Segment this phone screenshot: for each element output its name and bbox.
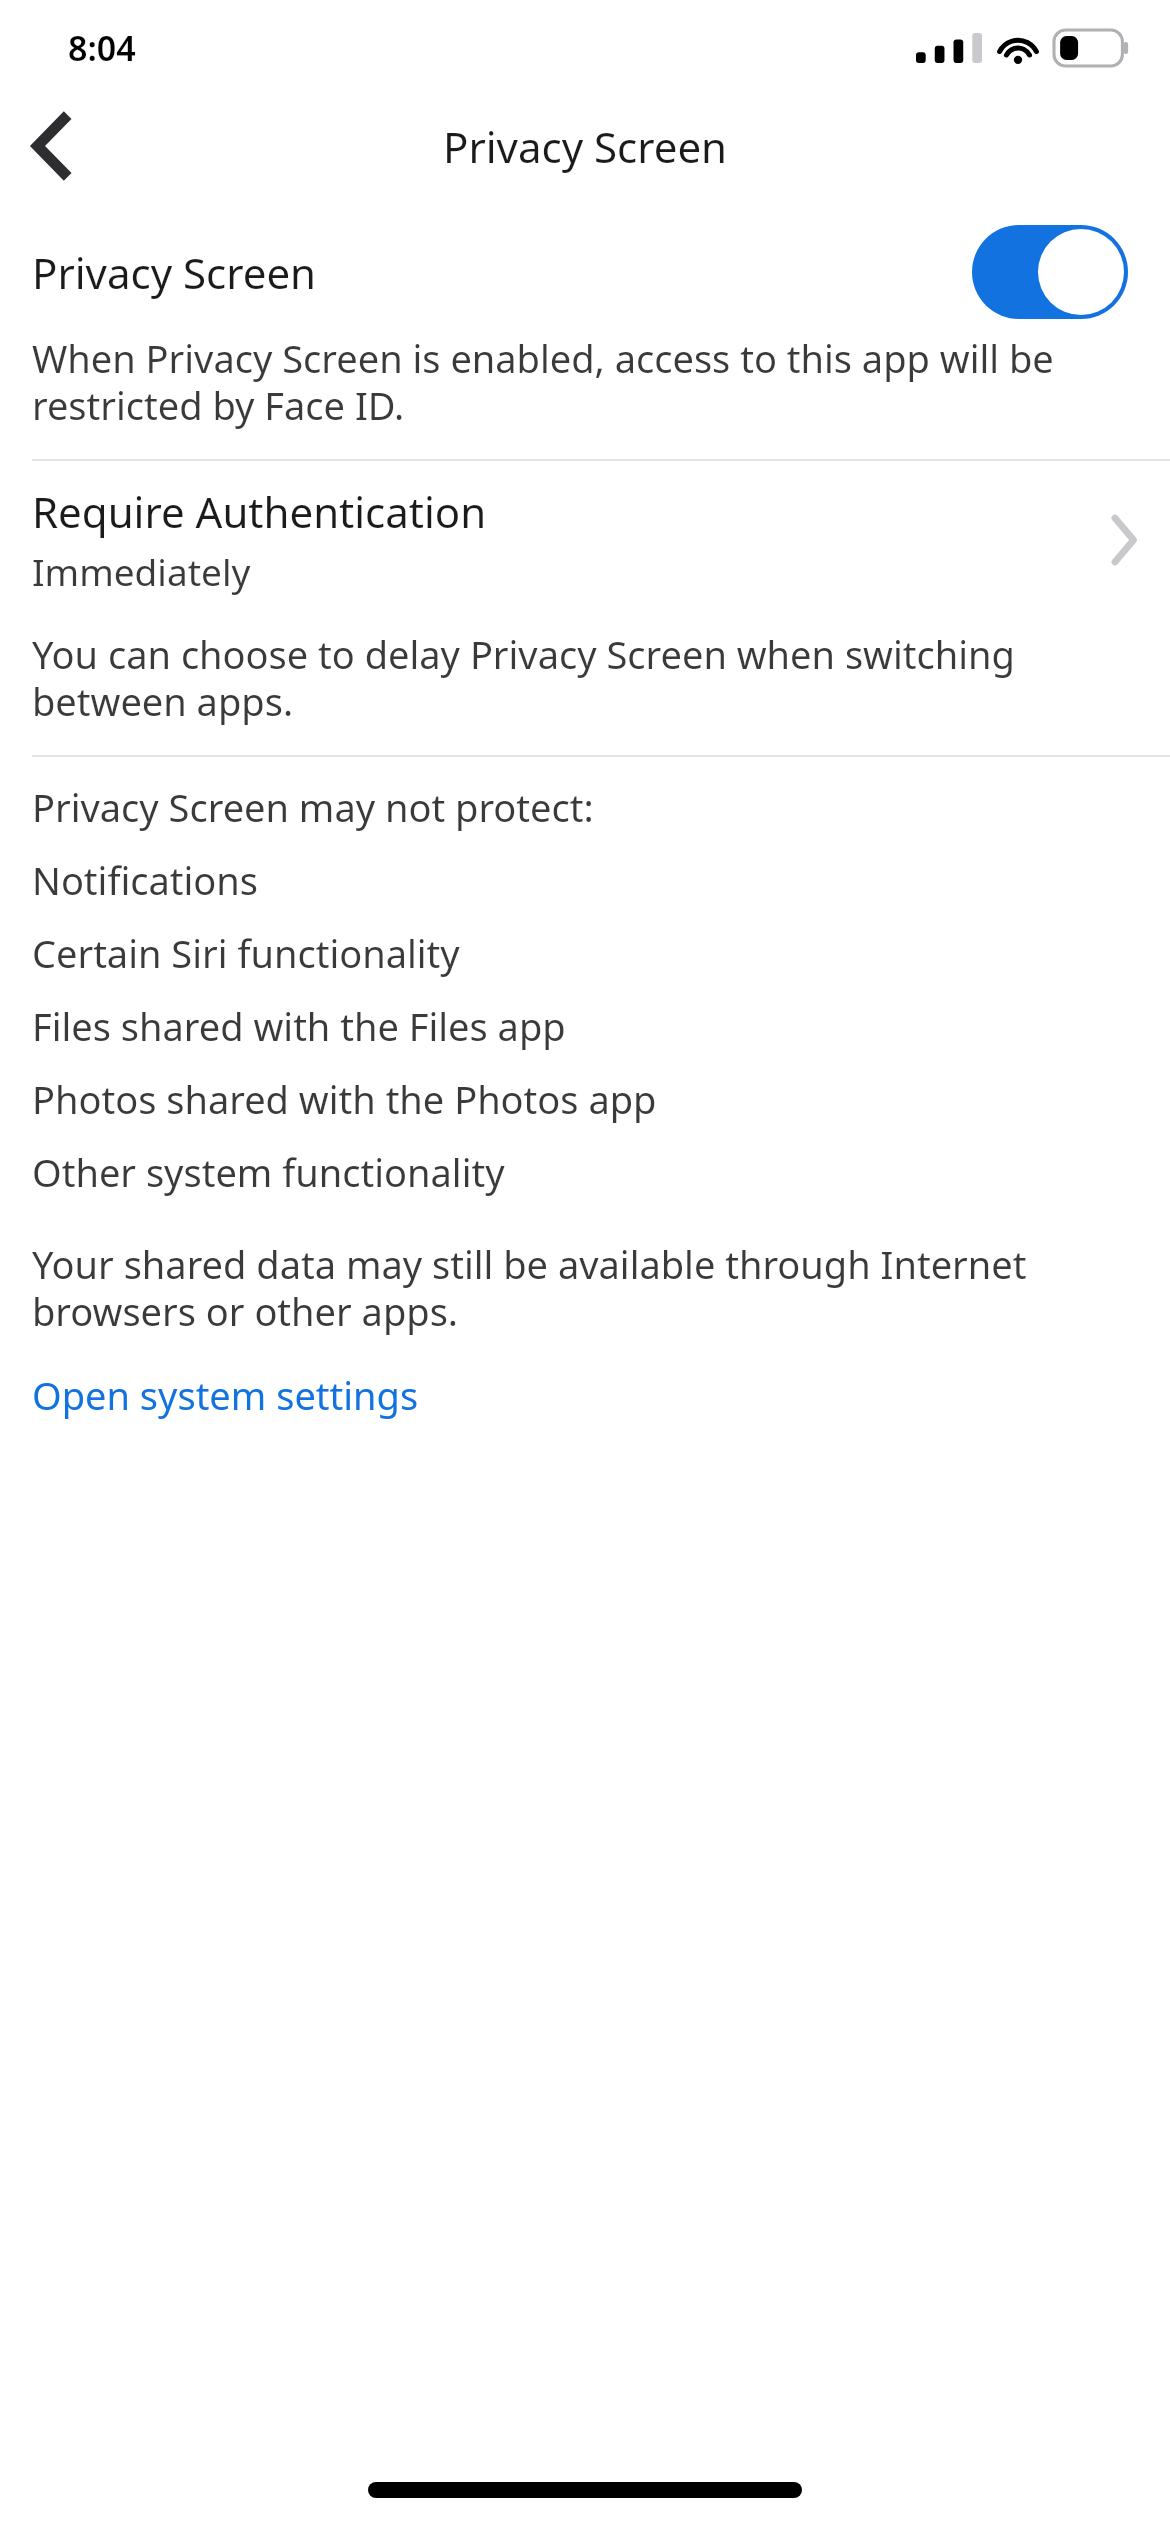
staticText: Your shared data may still be available …: [32, 1238, 1136, 1337]
staticText: When Privacy Screen is enabled, access t…: [32, 332, 1136, 431]
staticText: 8:04: [68, 25, 136, 71]
button[interactable]: Privacy Screen: [0, 224, 1170, 320]
staticText: You can choose to delay Privacy Screen w…: [32, 628, 1136, 727]
staticText: Privacy Screen may not protect:: [32, 781, 1136, 833]
staticText: Photos shared with the Photos app: [32, 1073, 657, 1125]
staticText: Other system functionality: [32, 1146, 505, 1198]
staticText: Notifications: [32, 854, 259, 906]
staticText: Privacy Screen: [443, 118, 728, 175]
button[interactable]: Open system settings: [0, 1363, 1170, 1431]
staticText: Privacy Screen: [32, 244, 972, 301]
staticText: Open system settings: [32, 1369, 419, 1421]
button[interactable]: Require Authentication: [0, 461, 1170, 614]
button[interactable]: Back: [14, 109, 88, 183]
staticText: Certain Siri functionality: [32, 927, 460, 979]
staticText: Files shared with the Files app: [32, 1000, 566, 1052]
other: Privacy Screen toggle, on: [972, 225, 1128, 319]
staticText: Require Authentication: [32, 483, 487, 540]
staticText: Immediately: [32, 546, 251, 596]
